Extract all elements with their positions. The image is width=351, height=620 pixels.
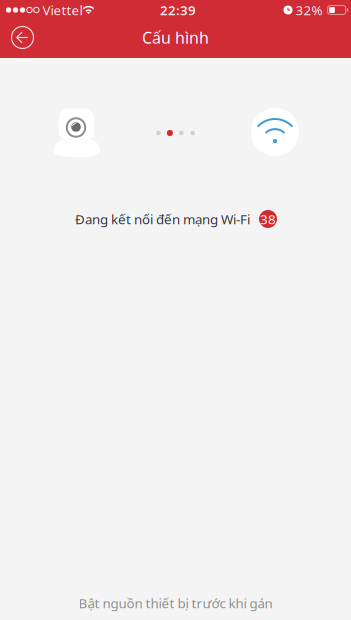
staticText: 22:39 (160, 1, 196, 19)
button[interactable]: Back (0, 19, 44, 55)
staticText: 38 (260, 210, 276, 228)
staticText: Bật nguồn thiết bị trước khi gán (78, 594, 272, 612)
staticText: Viettel (42, 1, 82, 19)
staticText: Cấu hình (142, 27, 209, 48)
staticText: 32% (295, 1, 322, 19)
staticText: Đang kết nối đến mạng Wi-Fi (75, 210, 250, 228)
